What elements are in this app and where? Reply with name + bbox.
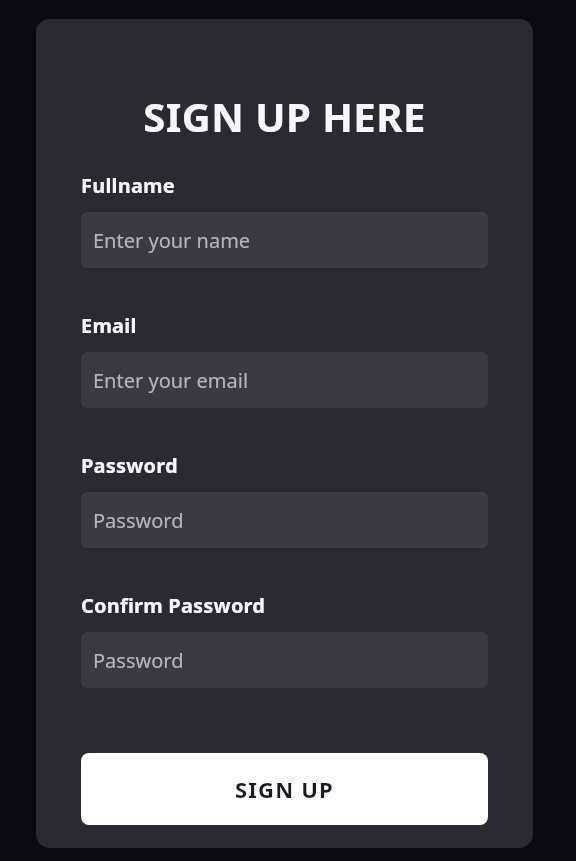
button[interactable]: Enter your name	[81, 212, 488, 268]
staticText: Email	[81, 312, 137, 339]
staticText: Enter your name	[93, 227, 251, 254]
staticText: SIGN UP HERE	[143, 89, 426, 143]
button[interactable]: Password	[81, 632, 488, 688]
staticText: Password	[93, 507, 184, 534]
staticText: Password	[81, 452, 178, 479]
button[interactable]: Password	[81, 492, 488, 548]
staticText: Password	[93, 647, 184, 674]
staticText: Fullname	[81, 172, 175, 199]
button[interactable]: Enter your email	[81, 352, 488, 408]
staticText: Enter your email	[93, 367, 249, 394]
staticText: Confirm Password	[81, 592, 266, 619]
button[interactable]: SIGN UP	[81, 753, 488, 825]
staticText: SIGN UP	[235, 774, 334, 804]
